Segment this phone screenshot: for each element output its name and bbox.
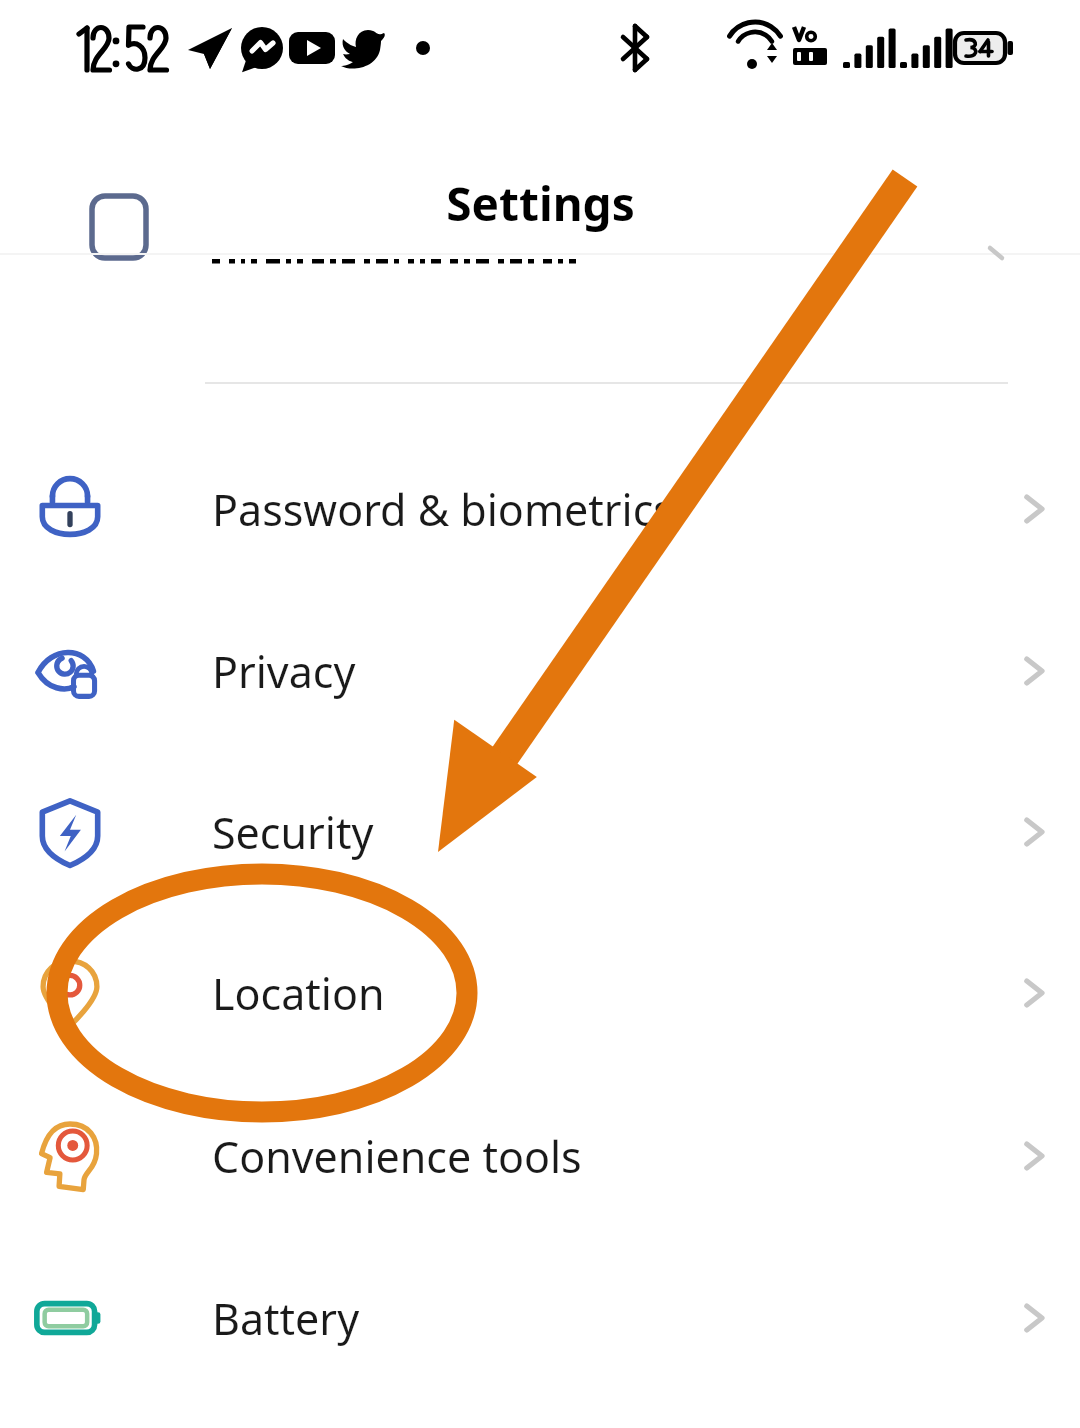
staticText: Convenience tools: [212, 1127, 582, 1186]
staticText: Password & biometrics: [212, 480, 674, 539]
button[interactable]: Privacy: [0, 590, 1080, 752]
button[interactable]: Password & biometrics: [0, 428, 1080, 590]
staticText: Battery: [212, 1289, 360, 1348]
button[interactable]: Convenience tools: [0, 1075, 1080, 1237]
staticText: Security: [212, 803, 374, 862]
button[interactable]: Security: [0, 751, 1080, 913]
staticText: Location: [212, 964, 385, 1023]
staticText: Privacy: [212, 642, 356, 701]
staticText: Settings: [446, 172, 635, 235]
button[interactable]: Notifications & status bar: [0, 190, 1080, 282]
button[interactable]: Battery: [0, 1237, 1080, 1399]
button[interactable]: Location: [0, 912, 1080, 1074]
